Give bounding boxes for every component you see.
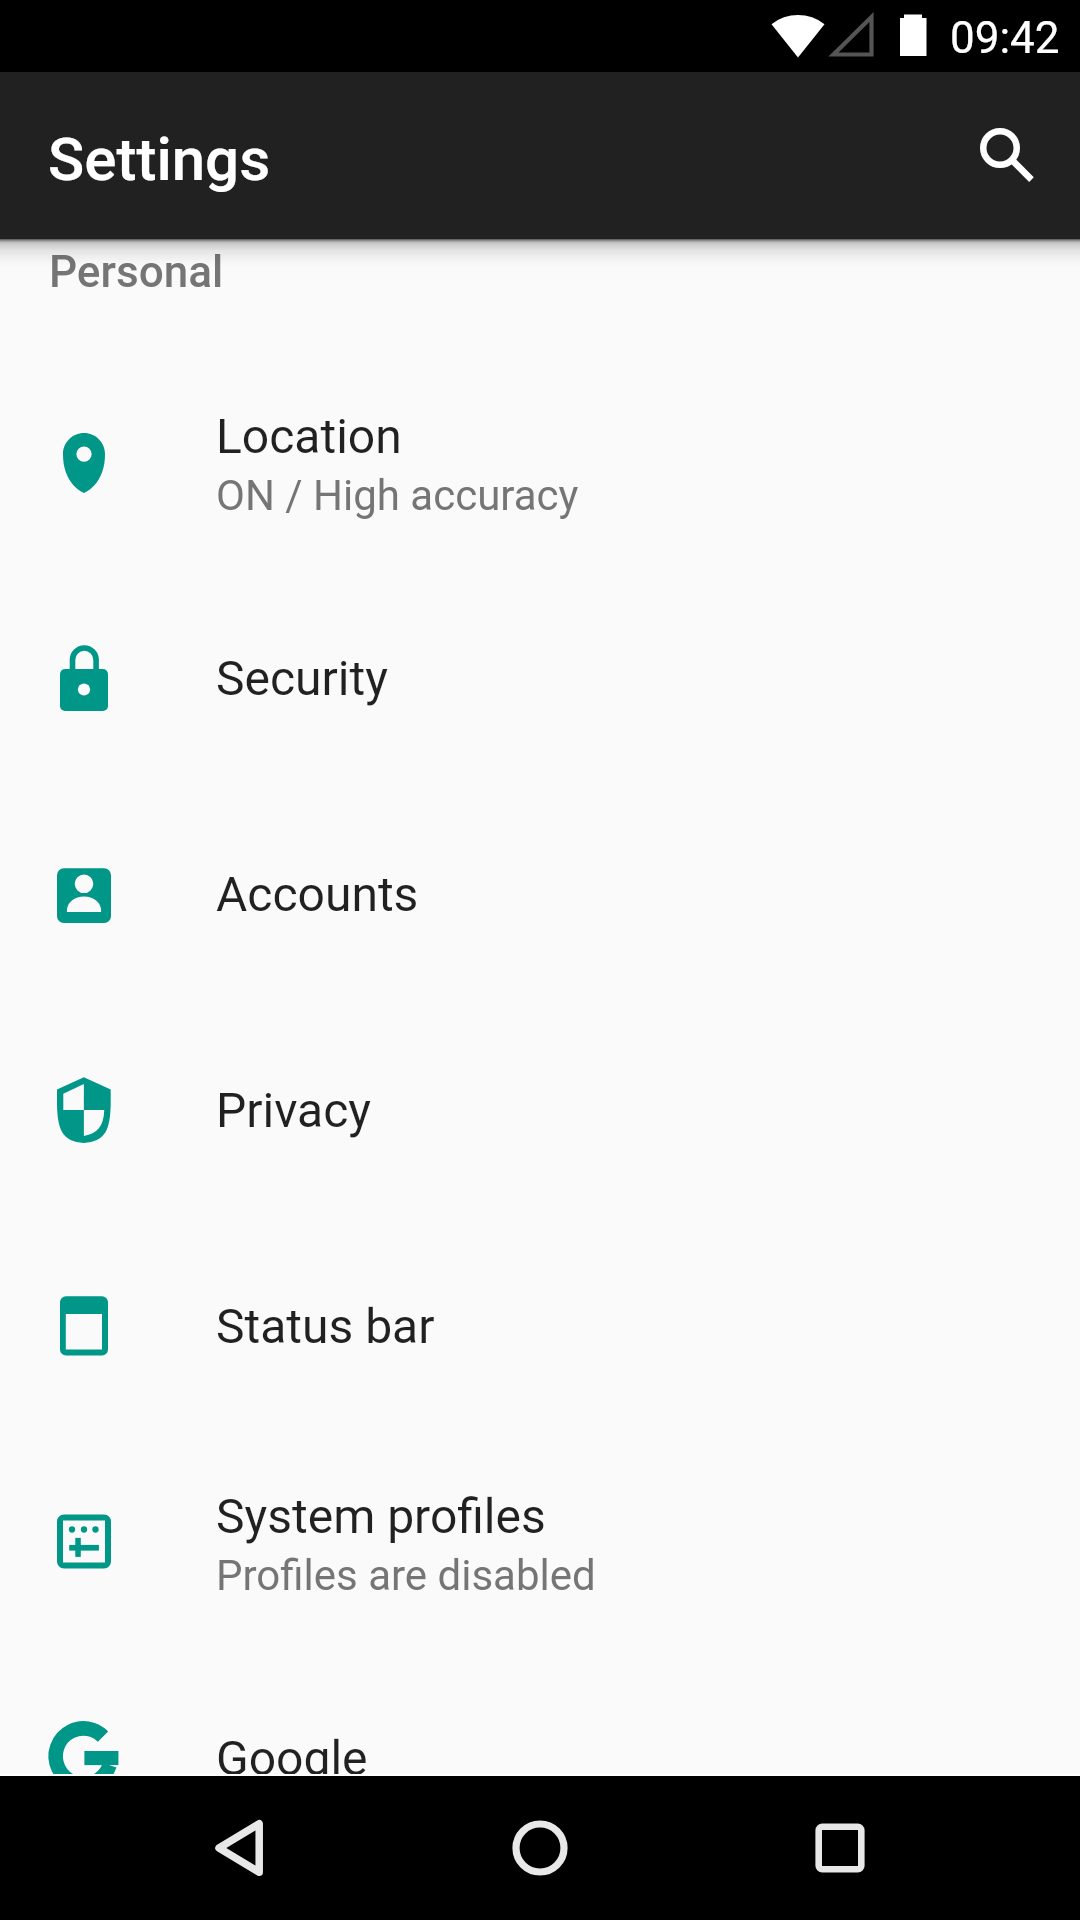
staticText: Privacy: [216, 1082, 372, 1138]
staticText: Accounts: [216, 866, 419, 922]
staticText: Settings: [48, 124, 271, 194]
button[interactable]: Google: [0, 1650, 1080, 1866]
staticText: Profiles are disabled: [216, 1551, 596, 1600]
button[interactable]: Home: [480, 1788, 600, 1908]
button[interactable]: Status bar: [0, 1218, 1080, 1434]
staticText: ON / High accuracy: [216, 471, 579, 520]
staticText: Google: [216, 1730, 368, 1786]
staticText: Status bar: [216, 1298, 435, 1354]
button[interactable]: Location: [0, 354, 1080, 570]
staticText: 09:42: [950, 12, 1060, 64]
staticText: Security: [216, 650, 388, 706]
staticText: Location: [216, 408, 402, 464]
button[interactable]: Recents: [780, 1788, 900, 1908]
button[interactable]: Privacy: [0, 1002, 1080, 1218]
button[interactable]: Back: [180, 1788, 300, 1908]
button[interactable]: System profiles: [0, 1434, 1080, 1650]
staticText: Personal: [49, 246, 224, 298]
button[interactable]: Search: [952, 100, 1048, 196]
button[interactable]: Accounts: [0, 786, 1080, 1002]
button[interactable]: Security: [0, 570, 1080, 786]
staticText: System profiles: [216, 1488, 546, 1544]
